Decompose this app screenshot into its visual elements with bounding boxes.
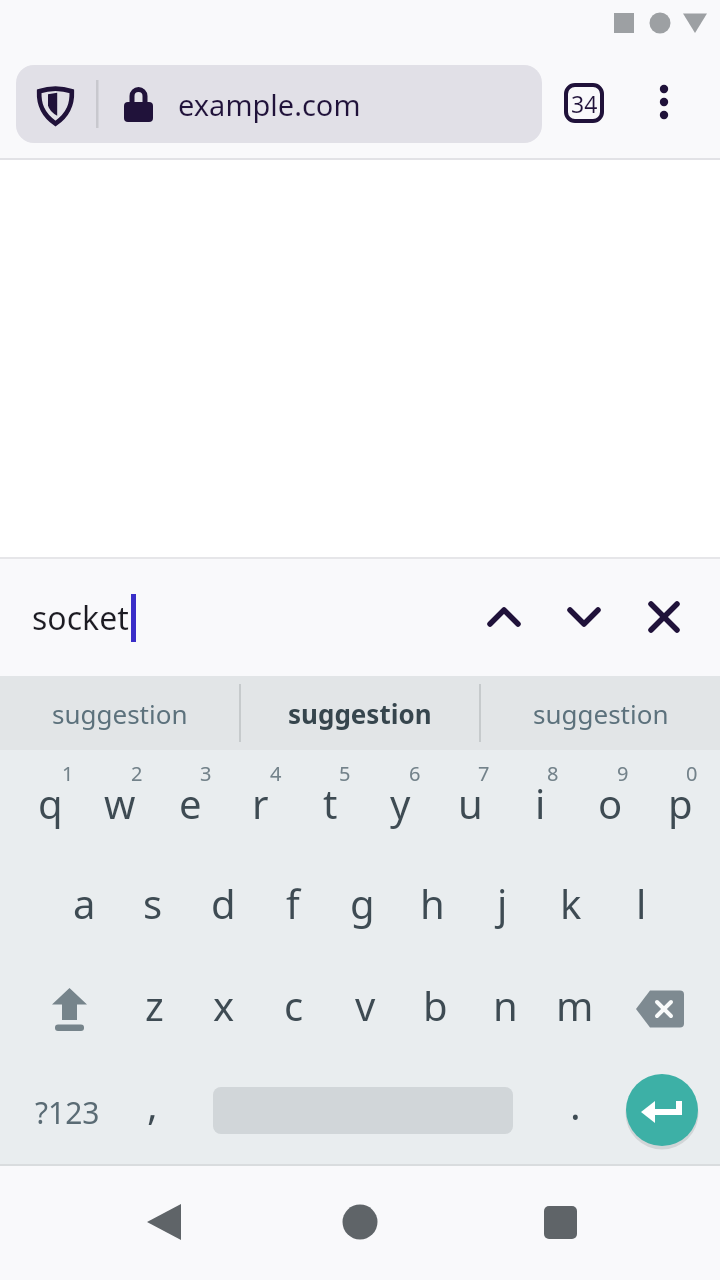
button[interactable]	[320, 1182, 400, 1262]
button[interactable]	[625, 578, 703, 656]
staticText: b	[423, 978, 448, 1032]
staticText: s	[143, 876, 163, 930]
button[interactable]: b	[401, 957, 469, 1053]
staticText: ,	[147, 1077, 158, 1131]
button[interactable]: g	[328, 855, 396, 951]
button[interactable]: w	[86, 755, 154, 851]
button[interactable]	[29, 963, 109, 1053]
staticText: suggestion	[52, 696, 188, 731]
staticText: i	[535, 776, 546, 830]
staticText: w	[104, 776, 136, 830]
staticText: 6	[409, 760, 421, 787]
staticText: x	[213, 978, 235, 1032]
button[interactable]: s	[119, 855, 187, 951]
button[interactable]: ?123	[22, 1067, 112, 1157]
staticText: 3	[200, 760, 212, 787]
button[interactable]: 34	[562, 81, 606, 125]
staticText: t	[323, 776, 338, 830]
button[interactable]: v	[331, 957, 399, 1053]
staticText: 2	[131, 760, 143, 787]
button[interactable]: h	[398, 855, 466, 951]
staticText: 5	[339, 760, 351, 787]
staticText: ?123	[35, 1092, 100, 1133]
button[interactable]	[465, 578, 543, 656]
button[interactable]: x	[190, 957, 258, 1053]
staticText: n	[493, 978, 518, 1032]
staticText: r	[252, 776, 269, 830]
staticText: a	[73, 876, 96, 930]
staticText: 0	[686, 760, 698, 787]
button[interactable]: suggestion	[481, 676, 720, 750]
button[interactable]: ,	[122, 1059, 182, 1149]
staticText: 1	[62, 760, 74, 787]
staticText: example.com	[178, 85, 361, 124]
staticText: l	[636, 876, 647, 930]
staticText: 4	[270, 760, 282, 787]
button[interactable]: i	[506, 755, 574, 851]
button[interactable]: a	[50, 855, 118, 951]
button[interactable]: m	[541, 957, 609, 1053]
button[interactable]: y	[366, 755, 434, 851]
button[interactable]: k	[537, 855, 605, 951]
button[interactable]: f	[259, 855, 327, 951]
button[interactable]: j	[468, 855, 536, 951]
button[interactable]	[124, 1182, 204, 1262]
staticText: 34	[571, 88, 598, 119]
button[interactable]: q	[16, 755, 84, 851]
button[interactable]: l	[607, 855, 675, 951]
button[interactable]: example.com	[16, 65, 542, 143]
staticText: h	[420, 876, 445, 930]
button[interactable]: d	[189, 855, 257, 951]
staticText: d	[211, 876, 236, 930]
staticText: o	[598, 776, 623, 830]
button[interactable]	[520, 1182, 600, 1262]
staticText: v	[355, 978, 376, 1032]
button[interactable]: e	[156, 755, 224, 851]
staticText: g	[350, 876, 375, 930]
staticText: y	[390, 776, 411, 830]
button[interactable]	[620, 964, 700, 1054]
button[interactable]: n	[471, 957, 539, 1053]
staticText: .	[570, 1077, 581, 1131]
staticText: suggestion	[533, 696, 669, 731]
staticText: p	[668, 776, 693, 830]
staticText: e	[179, 776, 202, 830]
button[interactable]: suggestion	[0, 676, 239, 750]
button[interactable]: p	[646, 755, 714, 851]
staticText: suggestion	[288, 696, 432, 731]
button[interactable]: z	[120, 957, 188, 1053]
button[interactable]: t	[296, 755, 364, 851]
button[interactable]	[545, 578, 623, 656]
staticText: 7	[478, 760, 490, 787]
button[interactable]	[640, 78, 688, 126]
button[interactable]: suggestion	[241, 676, 479, 750]
staticText: socket	[32, 596, 129, 640]
button[interactable]	[625, 1073, 699, 1147]
staticText: c	[284, 978, 304, 1032]
button[interactable]: r	[226, 755, 294, 851]
staticText: j	[497, 876, 508, 930]
staticText: m	[556, 978, 594, 1032]
button[interactable]: o	[576, 755, 644, 851]
button[interactable]: c	[260, 957, 328, 1053]
staticText: k	[560, 876, 582, 930]
staticText: q	[38, 776, 63, 830]
staticText: f	[286, 876, 300, 930]
staticText: 8	[547, 760, 559, 787]
staticText: 9	[617, 760, 629, 787]
staticText: z	[145, 978, 164, 1032]
button[interactable]: u	[436, 755, 504, 851]
staticText: u	[458, 776, 483, 830]
button[interactable]: .	[545, 1059, 605, 1149]
